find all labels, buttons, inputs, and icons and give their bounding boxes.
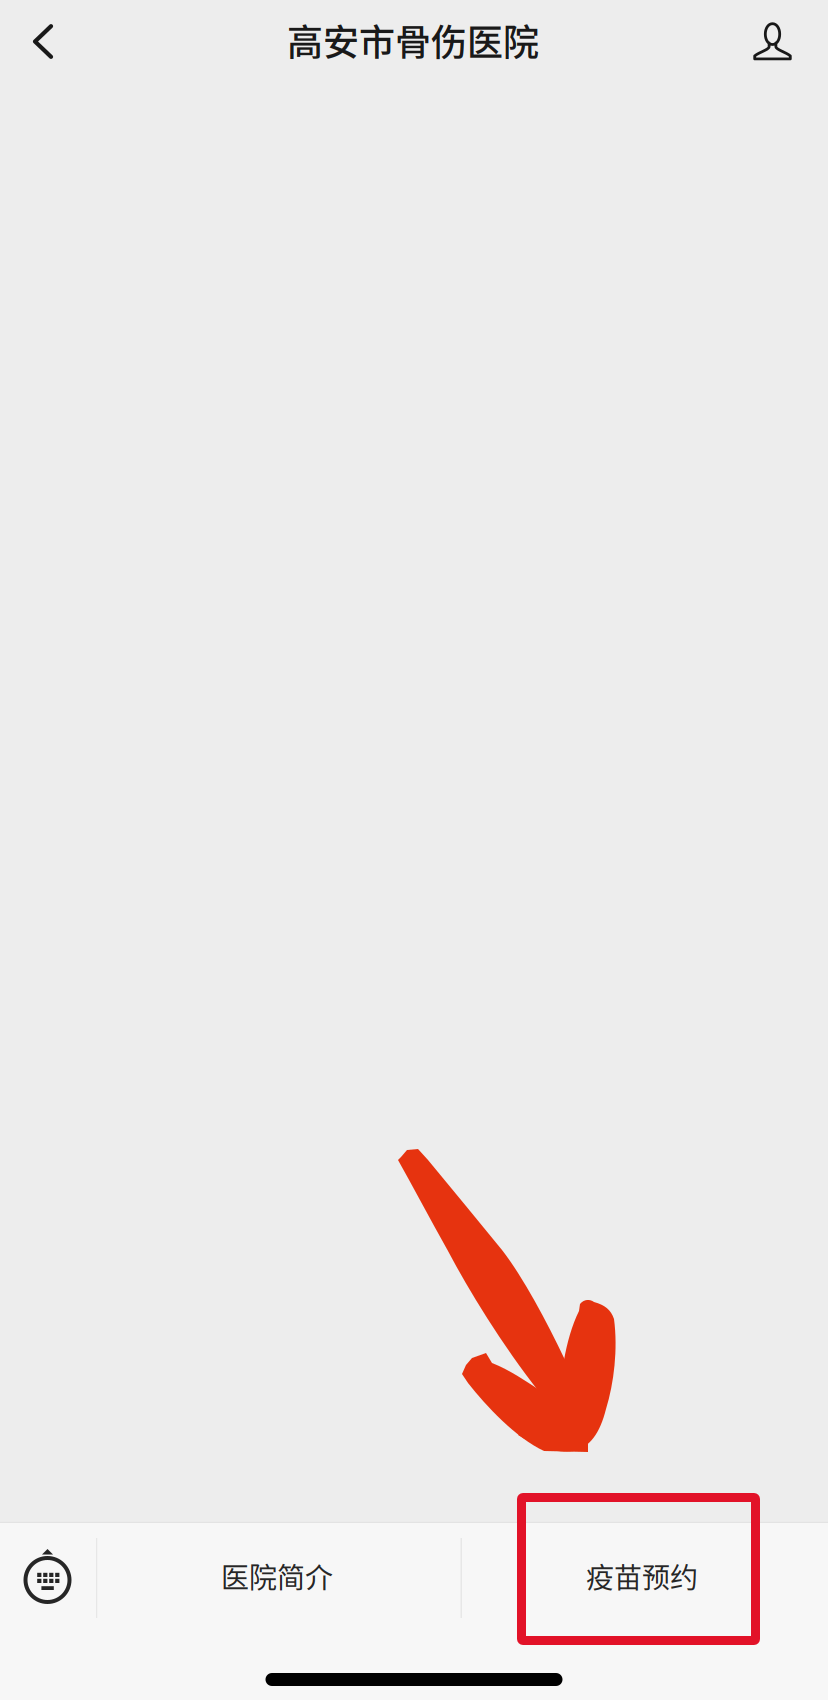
button[interactable]: Contact — [717, 0, 828, 83]
button[interactable]: Back — [0, 0, 86, 83]
staticText: 医院简介 — [221, 1556, 333, 1596]
staticText: 疫苗预约 — [586, 1556, 698, 1596]
staticText: 高安市骨伤医院 — [287, 14, 539, 66]
button[interactable]: 医院简介 — [97, 1523, 460, 1633]
button[interactable]: 疫苗预约 — [462, 1523, 828, 1633]
button[interactable]: Mini program menu — [0, 1523, 96, 1633]
